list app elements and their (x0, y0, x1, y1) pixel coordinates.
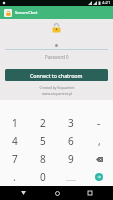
staticText: Connect to chatroom (30, 72, 83, 79)
staticText: , (98, 134, 101, 148)
staticText: . (13, 170, 16, 184)
staticText: SecureChat (15, 10, 38, 16)
button[interactable]: SecureChat app icon (4, 9, 12, 17)
button[interactable]: 7 (0, 150, 29, 168)
staticText: 1 (12, 116, 18, 130)
button[interactable]: 8 (29, 150, 57, 168)
staticText: 7 (12, 152, 18, 166)
button[interactable]: 0 (29, 168, 57, 186)
staticText: 4 (12, 134, 18, 148)
button[interactable]: 1 (0, 114, 29, 132)
other: Backspace (96, 157, 103, 162)
button[interactable]: Home (47, 186, 67, 200)
staticText: Created by Esquarient (39, 85, 75, 90)
button[interactable]: Backspace (85, 150, 113, 168)
staticText: 4:21 (102, 0, 111, 6)
staticText: 3 (68, 116, 74, 130)
button[interactable]: 3 (57, 114, 85, 132)
button[interactable]: Back (13, 186, 33, 200)
staticText: 8 (40, 152, 46, 166)
button[interactable]: 6 (57, 132, 85, 150)
button[interactable]: , (85, 132, 113, 150)
button[interactable]: . (0, 168, 29, 186)
staticText: 2 (40, 116, 46, 130)
button[interactable]: - (85, 114, 113, 132)
button[interactable]: Space (57, 168, 85, 186)
button[interactable]: 5 (29, 132, 57, 150)
button[interactable]: 4 (0, 132, 29, 150)
staticText: Password 0 (45, 54, 69, 60)
button[interactable]: 9 (57, 150, 85, 168)
staticText: 6 (68, 134, 74, 148)
staticText: - (97, 116, 101, 130)
button[interactable]: Recents (80, 186, 100, 200)
staticText: www.esquarient.pl (42, 91, 72, 96)
button[interactable]: Connect to chatroom (5, 69, 108, 81)
button[interactable]: Go (85, 168, 113, 186)
staticText: 5 (40, 134, 46, 148)
other: Go (95, 173, 103, 181)
staticText: 9 (68, 152, 74, 166)
button[interactable]: 2 (29, 114, 57, 132)
button[interactable]: Space (57, 168, 85, 186)
staticText: 0 (40, 170, 46, 184)
